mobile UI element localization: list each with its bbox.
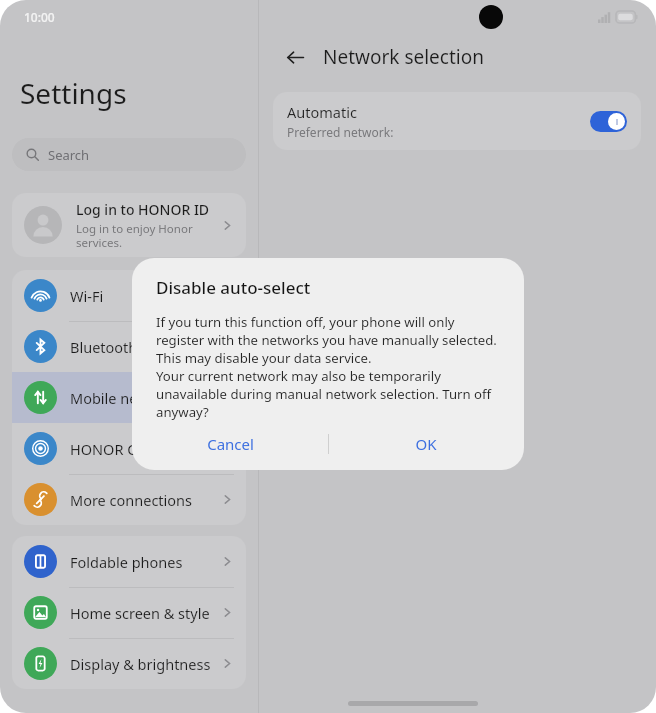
button[interactable]: OK [328,421,524,467]
button[interactable]: Automatic network selection toggle [590,111,627,132]
button[interactable]: Back [280,42,310,72]
staticText: HONOR Connect [70,439,221,459]
button[interactable]: Automatic [273,92,641,150]
button[interactable]: Wi-Fi [12,270,246,321]
staticText: Mobile network [70,388,221,408]
button[interactable]: Mobile network [12,372,246,423]
staticText: Search [48,146,90,164]
staticText: Settings [20,74,127,112]
staticText: Wi-Fi [70,286,221,306]
button[interactable]: Display & brightness [12,638,246,689]
staticText: Preferred network: [287,124,394,140]
staticText: Home screen & style [70,603,221,623]
staticText: Display & brightness [70,654,221,674]
staticText: Foldable phones [70,552,221,572]
button[interactable]: Log in to HONOR ID [12,193,246,257]
staticText: More connections [70,490,221,510]
staticText: Cancel [207,434,254,454]
button[interactable]: Bluetooth [12,321,246,372]
staticText: Bluetooth [70,337,221,357]
staticText: Disable auto-select [156,276,311,299]
staticText: OK [415,434,437,454]
button[interactable]: Cancel [132,421,328,467]
staticText: Log in to HONOR ID [76,200,210,219]
button[interactable]: HONOR Connect [12,423,246,474]
button[interactable]: Search [12,138,246,171]
button[interactable]: Home screen & style [12,587,246,638]
staticText: 10:00 [24,9,55,25]
button[interactable]: Foldable phones [12,536,246,587]
staticText: Automatic [287,102,357,122]
staticText: Log in to enjoy Honor services. [76,221,221,250]
staticText: Network selection [323,44,484,70]
button[interactable]: More connections [12,474,246,525]
staticText: If you turn this function off, your phon… [156,313,500,421]
